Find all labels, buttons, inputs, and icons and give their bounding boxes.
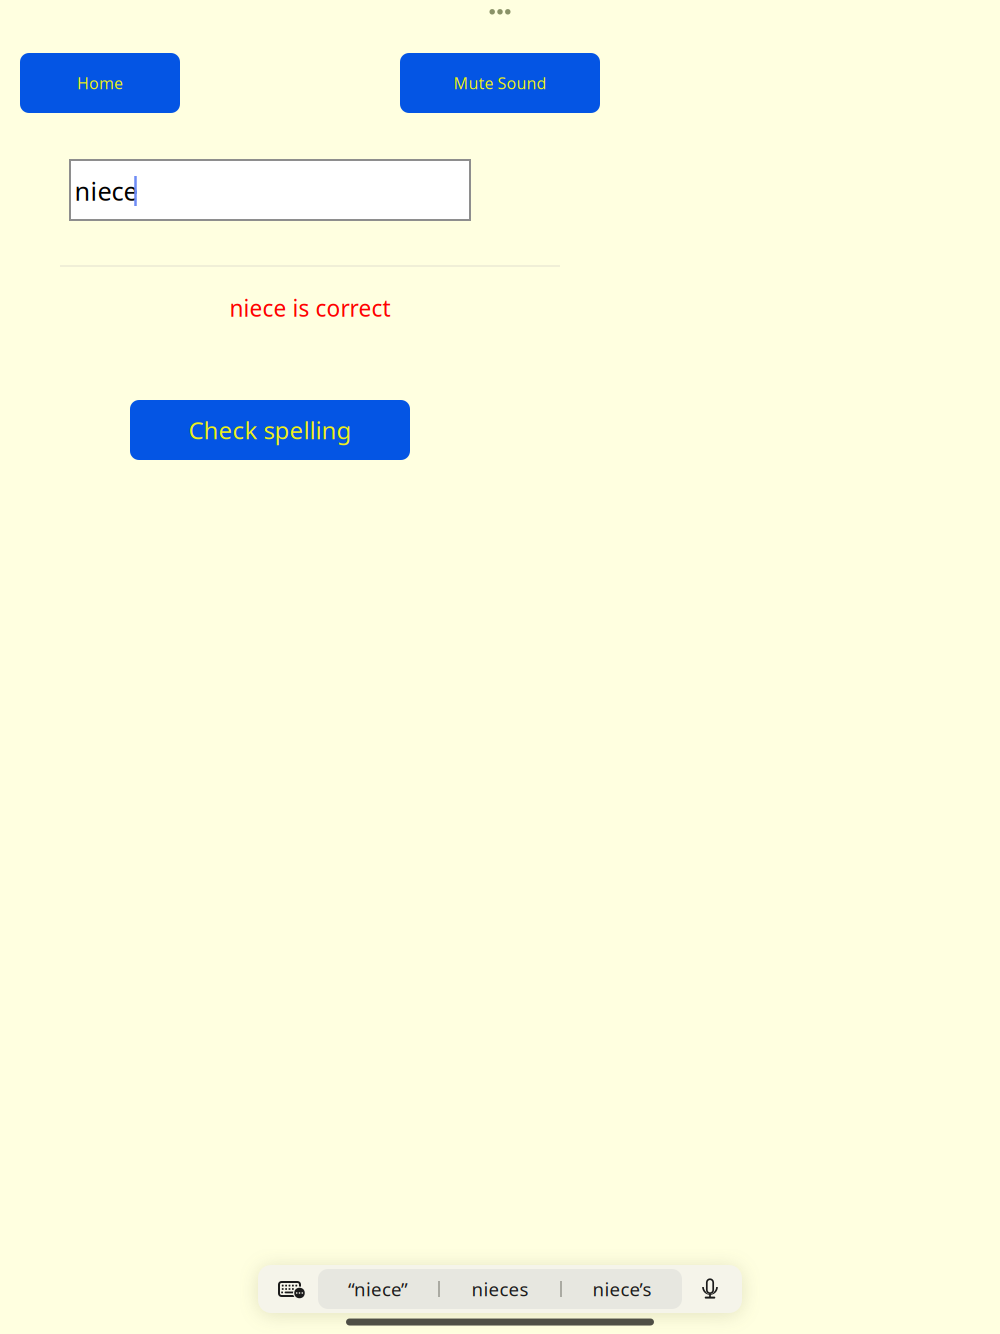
staticText: niece’s <box>592 1277 651 1301</box>
staticText: niece <box>74 174 137 208</box>
staticText: nieces <box>471 1277 528 1301</box>
staticText: Check spelling <box>188 414 351 446</box>
button[interactable]: niece’s <box>562 1269 682 1309</box>
button[interactable]: “niece” <box>318 1269 438 1309</box>
staticText: Home <box>77 72 123 94</box>
staticText: “niece” <box>348 1277 408 1301</box>
button[interactable]: Keyboard settings <box>264 1265 320 1313</box>
button[interactable]: Home <box>20 53 180 113</box>
button[interactable]: Dictate <box>684 1265 736 1313</box>
staticText: niece is correct <box>229 293 390 323</box>
button[interactable]: Mute Sound <box>400 53 600 113</box>
button[interactable]: nieces <box>440 1269 560 1309</box>
staticText: Mute Sound <box>453 72 546 94</box>
button[interactable]: Check spelling <box>130 400 410 460</box>
